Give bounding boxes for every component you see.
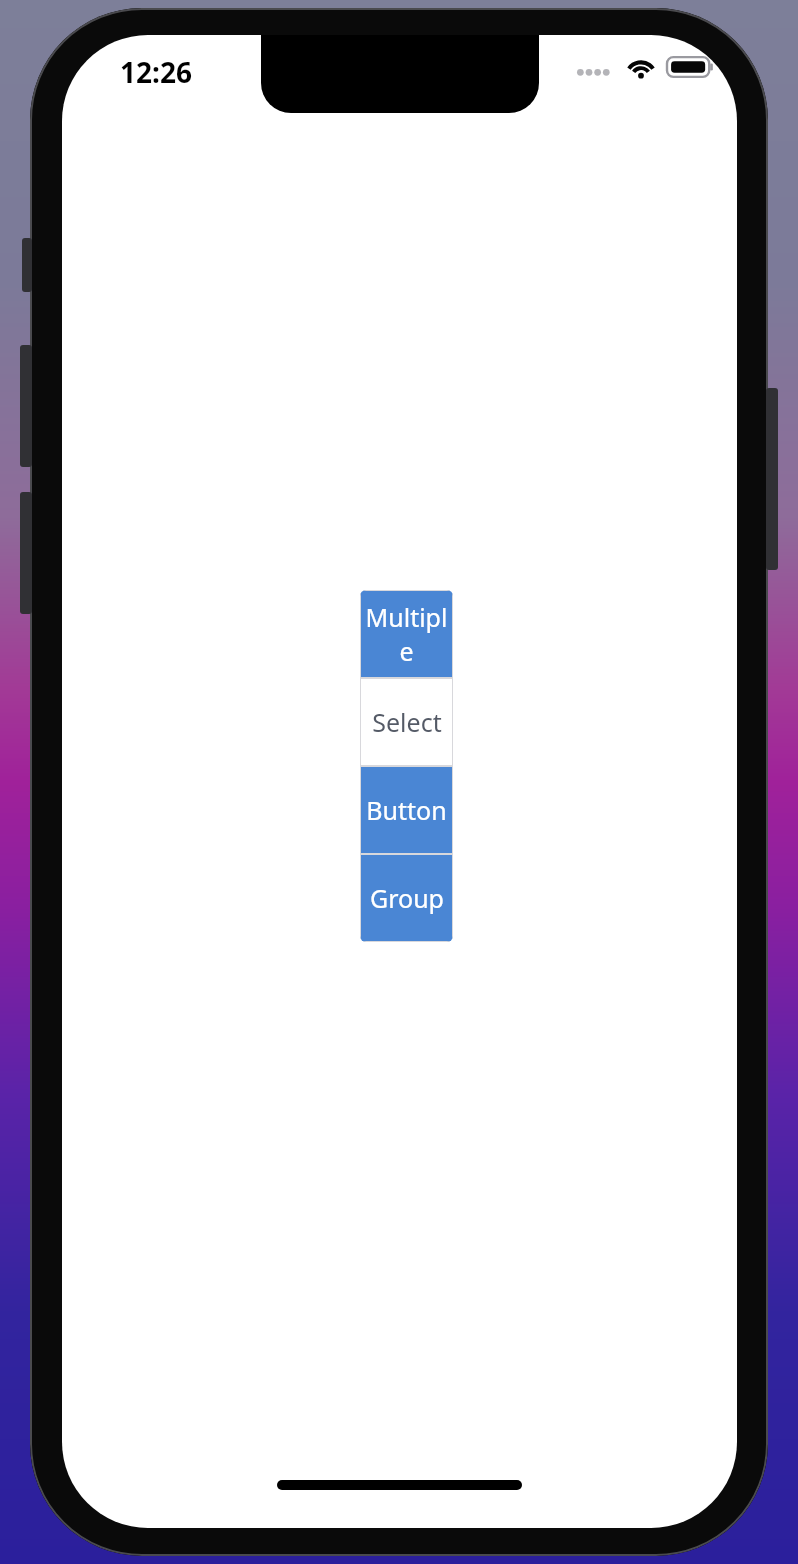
button[interactable]: Multiple [360, 590, 453, 678]
staticText: Button [366, 793, 447, 827]
staticText: 12:26 [120, 53, 192, 91]
button[interactable]: Select [360, 678, 453, 766]
button[interactable]: Group [360, 854, 453, 942]
button[interactable]: Button [360, 766, 453, 854]
staticText: Group [370, 881, 444, 915]
staticText: Multiple [362, 600, 451, 668]
staticText: Select [372, 705, 442, 739]
